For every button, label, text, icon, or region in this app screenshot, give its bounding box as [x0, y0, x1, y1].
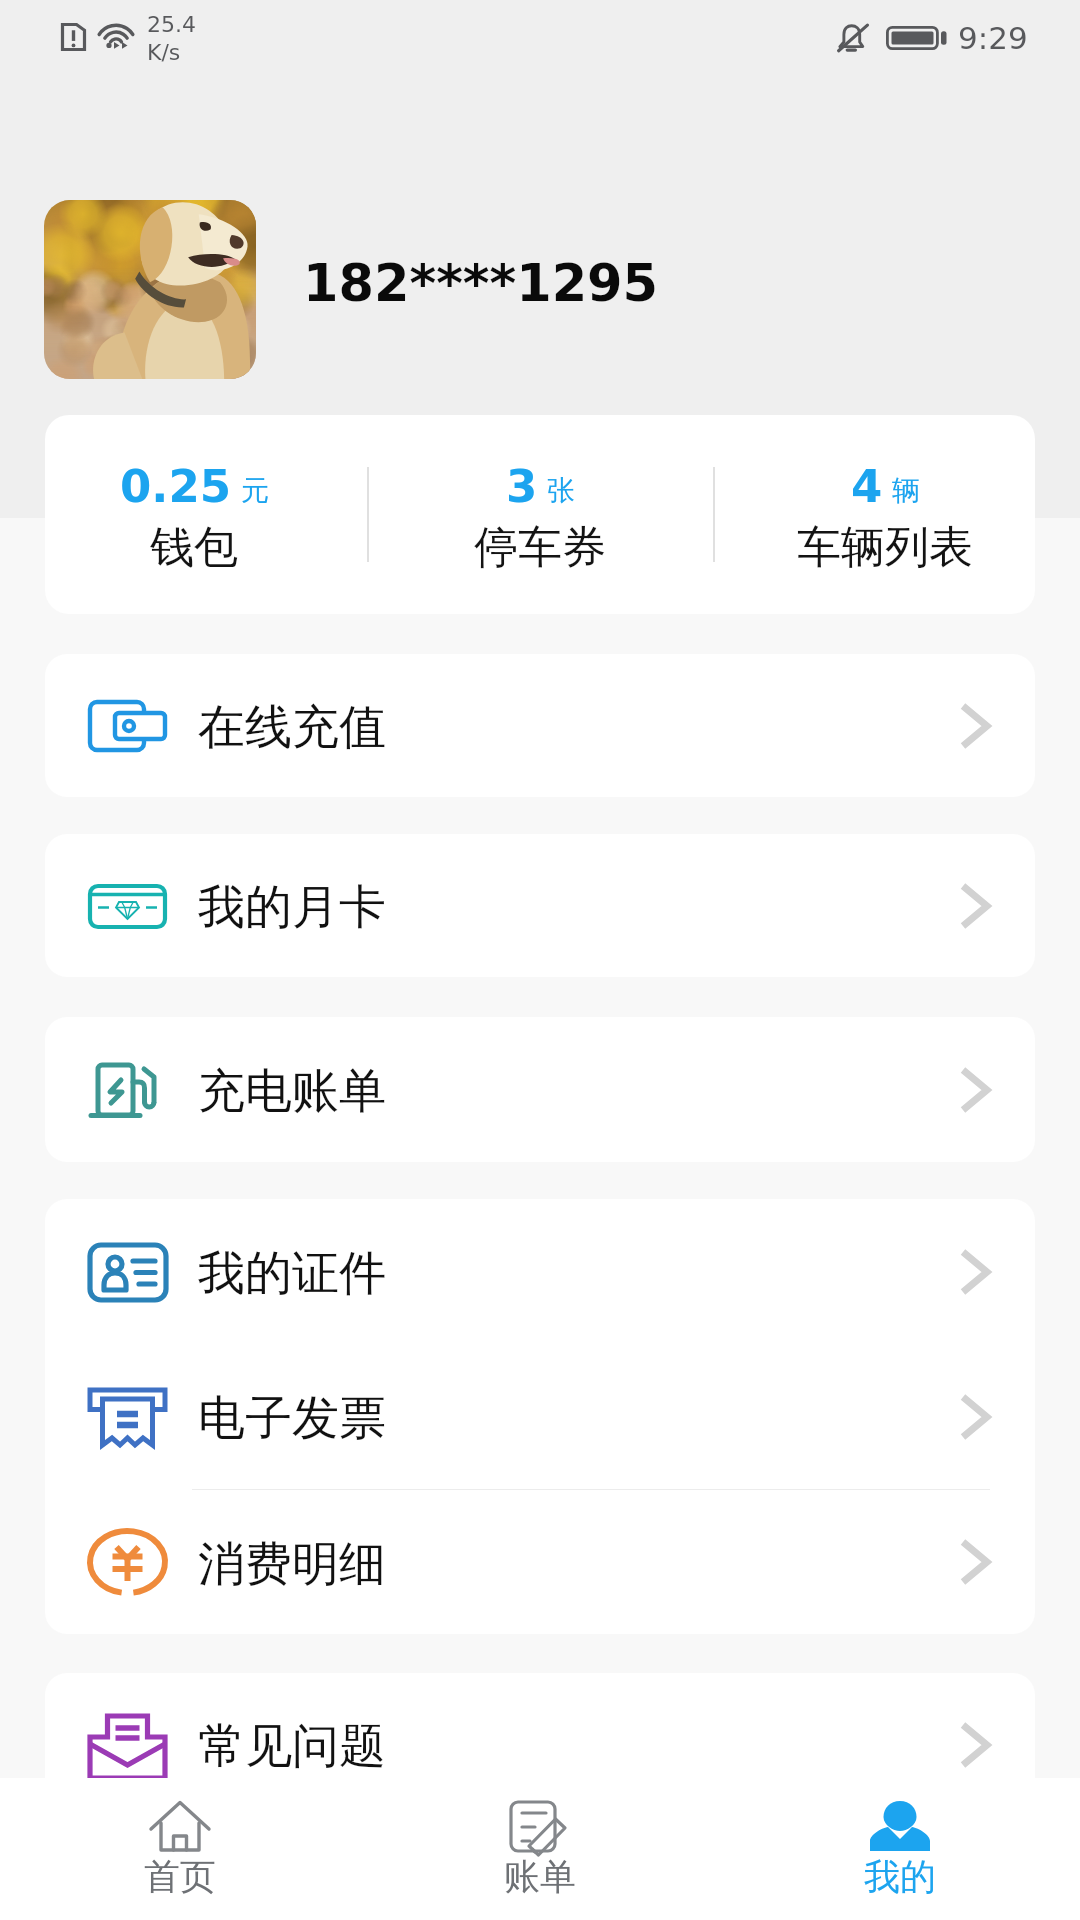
staticText: 4 [851, 460, 883, 512]
staticText: 辆 [892, 473, 920, 508]
button[interactable]: 在线充值 [45, 654, 1035, 797]
staticText: 9:29 [958, 20, 1028, 56]
staticText: 车辆列表 [797, 520, 973, 575]
button[interactable]: 电子发票 [45, 1344, 1035, 1489]
staticText: 充电账单 [198, 1062, 386, 1121]
staticText: 3 [506, 460, 538, 512]
staticText: 停车券 [474, 520, 606, 575]
other: 账单 [509, 1800, 571, 1862]
other: 我的 [869, 1800, 931, 1862]
button[interactable] [44, 200, 256, 379]
staticText: 我的证件 [198, 1244, 386, 1303]
staticText: 我的 [864, 1854, 936, 1899]
button[interactable]: 充电账单 [45, 1017, 1035, 1162]
button[interactable]: 我的月卡 [45, 834, 1035, 977]
other: 首页 [149, 1800, 211, 1862]
staticText: 182****1295 [303, 254, 659, 313]
staticText: 元 [241, 473, 269, 508]
button[interactable]: 首页 [0, 1778, 360, 1920]
button[interactable]: 账单 [360, 1778, 720, 1920]
staticText: 钱包 [150, 520, 238, 575]
button[interactable]: 3 [375, 415, 705, 614]
button[interactable]: 4 [720, 415, 1035, 614]
staticText: K/s [147, 40, 181, 66]
staticText: 张 [547, 473, 575, 508]
staticText: 消费明细 [198, 1535, 386, 1594]
staticText: 电子发票 [198, 1389, 386, 1448]
staticText: 0.25 [120, 460, 232, 512]
button[interactable]: 常见问题 [45, 1673, 1035, 1816]
button[interactable]: 我的证件 [45, 1199, 1035, 1344]
button[interactable]: 我的 [720, 1778, 1080, 1920]
staticText: 常见问题 [198, 1717, 386, 1776]
staticText: 账单 [504, 1854, 576, 1899]
staticText: 25.4 [147, 12, 196, 38]
staticText: 在线充值 [198, 698, 386, 757]
staticText: 首页 [144, 1854, 216, 1899]
button[interactable]: 消费明细 [45, 1490, 1035, 1634]
staticText: 我的月卡 [198, 878, 386, 937]
button[interactable]: 0.25 [45, 415, 359, 614]
